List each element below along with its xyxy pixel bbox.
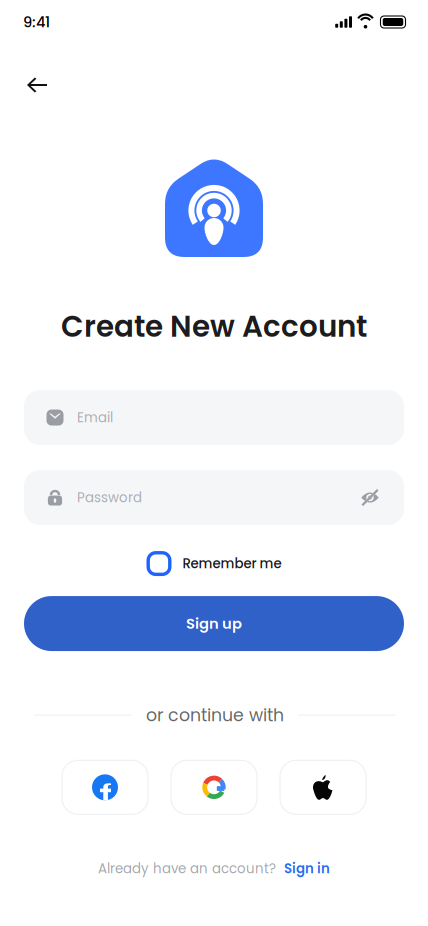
button[interactable]: Back — [15, 63, 59, 107]
staticText: Sign in — [284, 859, 330, 878]
button[interactable]: Sign in — [284, 859, 330, 878]
staticText: Password — [77, 488, 142, 507]
button[interactable]: Sign up — [24, 596, 404, 651]
button[interactable]: Show password — [355, 483, 385, 513]
staticText: Already have an account? — [98, 859, 276, 878]
button[interactable]: Continue with Google — [171, 760, 257, 814]
button[interactable]: Remember me — [146, 549, 281, 578]
staticText: or continue with — [146, 703, 284, 727]
staticText: Remember me — [182, 554, 281, 573]
staticText: Sign up — [186, 613, 242, 634]
staticText: Create New Account — [61, 306, 367, 347]
button[interactable]: Continue with Apple — [280, 760, 366, 814]
staticText: Email — [77, 408, 113, 427]
button[interactable]: Continue with Facebook — [62, 760, 148, 814]
staticText: 9:41 — [23, 12, 50, 32]
